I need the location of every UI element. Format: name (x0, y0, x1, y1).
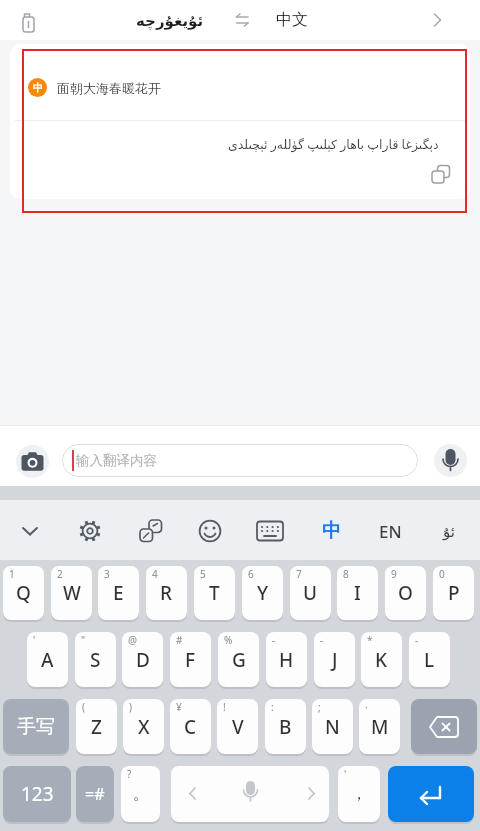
staticText: ， (351, 784, 367, 804)
button[interactable] (16, 445, 49, 478)
staticText: 1 (9, 567, 15, 581)
staticText: R (160, 580, 173, 606)
button[interactable]: 面朝大海春暖花开 (57, 79, 337, 97)
staticText: 7 (296, 567, 302, 581)
staticText: ' (344, 767, 347, 781)
button[interactable] (388, 766, 474, 822)
staticText: : (271, 700, 274, 714)
button[interactable]: Z (76, 699, 117, 754)
button[interactable]: F (170, 632, 211, 687)
button[interactable]: L (409, 632, 450, 687)
staticText: ( (82, 700, 85, 714)
button[interactable]: K (361, 632, 402, 687)
staticText: V (232, 714, 244, 740)
staticText: 8 (343, 567, 349, 581)
button[interactable] (424, 8, 450, 32)
staticText: 。 (133, 784, 149, 804)
button[interactable] (10, 5, 46, 37)
button[interactable] (434, 444, 467, 477)
button[interactable]: 。 (121, 766, 160, 822)
button[interactable] (194, 515, 226, 547)
button[interactable]: ئۇ (431, 515, 467, 547)
button[interactable]: ئۇيغۇرچە (110, 7, 230, 33)
staticText: " (81, 633, 86, 647)
staticText: 手写 (17, 715, 55, 739)
button[interactable] (135, 515, 167, 547)
staticText: 5 (200, 567, 206, 581)
staticText: ¥ (176, 700, 182, 714)
staticText: ? (127, 767, 132, 781)
button[interactable] (14, 515, 46, 547)
button[interactable] (254, 515, 286, 547)
button[interactable]: ， (338, 766, 380, 822)
button[interactable]: X (123, 699, 164, 754)
button[interactable]: 中文 (262, 7, 322, 33)
button[interactable]: 手写 (3, 699, 69, 754)
button[interactable]: A (27, 632, 68, 687)
button[interactable] (62, 444, 418, 477)
button[interactable]: V (217, 699, 258, 754)
button[interactable]: H (266, 632, 307, 687)
button[interactable]: W (51, 566, 92, 620)
button[interactable]: =# (76, 766, 114, 822)
staticText: 中 (33, 81, 43, 94)
button[interactable]: G (218, 632, 259, 687)
button[interactable]: P (433, 566, 474, 620)
staticText: - (272, 633, 276, 647)
button[interactable]: U (290, 566, 331, 620)
staticText: C (184, 714, 197, 740)
staticText: دېگىزغا قاراپ باھار كېلىپ گۈللەر ئېچىلدى (228, 136, 439, 153)
button[interactable]: N (312, 699, 353, 754)
staticText: * (367, 633, 373, 647)
staticText: G (232, 647, 246, 673)
staticText: 中文 (276, 10, 308, 30)
staticText: J (332, 647, 338, 673)
button[interactable]: T (194, 566, 235, 620)
staticText: Y (257, 580, 269, 606)
button[interactable]: R (146, 566, 187, 620)
staticText: @ (128, 633, 137, 647)
button[interactable] (427, 162, 455, 188)
staticText: K (375, 647, 388, 673)
button[interactable]: Q (3, 566, 44, 620)
staticText: - (415, 633, 419, 647)
staticText: U (303, 580, 318, 606)
button[interactable] (230, 10, 254, 30)
button[interactable]: Y (242, 566, 283, 620)
button[interactable]: 中 (313, 515, 349, 547)
button[interactable]: 123 (3, 766, 71, 822)
staticText: 面朝大海春暖花开 (57, 80, 161, 96)
staticText: 123 (21, 781, 54, 807)
button[interactable]: I (337, 566, 378, 620)
staticText: 0 (439, 567, 445, 581)
button[interactable]: D (122, 632, 163, 687)
staticText: Q (16, 580, 31, 606)
staticText: X (138, 714, 150, 740)
button[interactable]: M (359, 699, 400, 754)
button[interactable]: O (385, 566, 426, 620)
staticText: P (448, 580, 460, 606)
staticText: N (325, 714, 340, 740)
button[interactable]: B (265, 699, 306, 754)
button[interactable] (74, 515, 106, 547)
staticText: 3 (104, 567, 110, 581)
button[interactable]: E (98, 566, 139, 620)
staticText: % (224, 633, 233, 647)
button[interactable]: C (170, 699, 211, 754)
staticText: L (424, 647, 435, 673)
staticText: F (185, 647, 196, 673)
staticText: 6 (248, 567, 254, 581)
button[interactable] (171, 766, 329, 822)
staticText: B (279, 714, 292, 740)
staticText: Z (91, 714, 102, 740)
staticText: 2 (57, 567, 63, 581)
staticText: E (113, 580, 124, 606)
button[interactable] (411, 699, 477, 754)
button[interactable]: دېگىزغا قاراپ باھار كېلىپ گۈللەر ئېچىلدى (140, 133, 439, 155)
staticText: 9 (391, 567, 397, 581)
staticText: T (209, 580, 220, 606)
button[interactable]: EN (372, 515, 408, 547)
staticText: · (365, 700, 368, 714)
button[interactable]: S (75, 632, 116, 687)
button[interactable]: J (314, 632, 355, 687)
